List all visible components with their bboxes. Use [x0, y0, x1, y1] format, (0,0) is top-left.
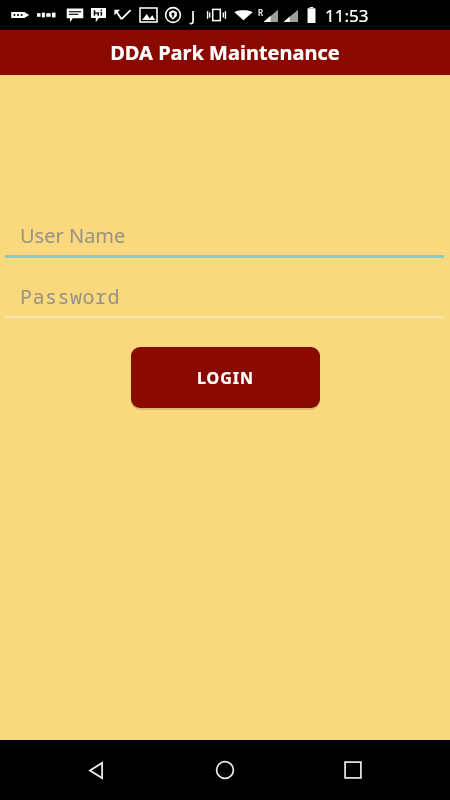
button[interactable]: User Name [0, 215, 450, 258]
button[interactable]: Password [0, 276, 450, 318]
button[interactable]: LOGIN [131, 347, 320, 408]
button[interactable]: Recent apps [322, 740, 384, 800]
staticText: Password [20, 283, 120, 310]
staticText: User Name [20, 222, 126, 249]
staticText: LOGIN [197, 367, 255, 389]
staticText: 11:53 [325, 4, 369, 27]
button[interactable]: Back [66, 740, 128, 800]
staticText: J [191, 5, 196, 25]
staticText: DDA Park Maintenance [110, 39, 340, 66]
button[interactable]: Home [194, 740, 256, 800]
staticText: R [258, 7, 263, 18]
